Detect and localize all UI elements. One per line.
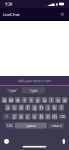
button[interactable]: o bbox=[55, 97, 61, 103]
staticText: ⌫ bbox=[59, 114, 65, 119]
button[interactable]: Type bbox=[22, 87, 45, 93]
staticText: ⇧ bbox=[5, 114, 8, 119]
staticText: p bbox=[63, 96, 66, 104]
staticText: 123 bbox=[6, 123, 12, 128]
staticText: b bbox=[40, 113, 43, 120]
staticText: o bbox=[56, 96, 59, 104]
staticText: return bbox=[51, 123, 62, 128]
staticText: LiveChat bbox=[3, 12, 20, 17]
button[interactable]: g bbox=[32, 104, 37, 110]
staticText: “Type” bbox=[6, 88, 17, 93]
staticText: h bbox=[40, 104, 43, 111]
staticText: u bbox=[43, 96, 46, 104]
staticText: z bbox=[13, 113, 16, 120]
staticText: r bbox=[23, 96, 25, 104]
button[interactable]: Close bbox=[58, 10, 66, 18]
button[interactable]: r bbox=[22, 97, 27, 103]
button[interactable]: w bbox=[8, 97, 14, 103]
button[interactable]: s bbox=[12, 104, 17, 110]
staticText: 9:28 bbox=[5, 1, 12, 7]
staticText: ◗ bbox=[56, 2, 58, 6]
staticText: l bbox=[61, 104, 62, 111]
button[interactable]: “Type” bbox=[1, 87, 22, 93]
button[interactable]: h bbox=[38, 104, 44, 110]
button[interactable]: Emoji bbox=[4, 139, 9, 144]
button[interactable]: Dictate bbox=[63, 139, 65, 144]
staticText: j bbox=[47, 104, 48, 111]
staticText: Type bbox=[29, 88, 37, 93]
button[interactable]: t bbox=[28, 97, 34, 103]
button[interactable]: space bbox=[15, 122, 47, 128]
staticText: k bbox=[53, 104, 56, 111]
button[interactable]: j bbox=[45, 104, 51, 110]
staticText: y bbox=[36, 96, 39, 104]
button[interactable]: e bbox=[15, 97, 20, 103]
button[interactable]: f bbox=[25, 104, 30, 110]
staticText: f bbox=[27, 104, 29, 111]
staticText: c bbox=[26, 113, 29, 120]
button[interactable]: p bbox=[62, 97, 67, 103]
button[interactable]: y bbox=[35, 97, 41, 103]
button[interactable]: x bbox=[18, 113, 24, 119]
button[interactable]: ⌫ bbox=[59, 113, 66, 119]
staticText: m bbox=[52, 113, 57, 120]
staticText: t bbox=[30, 96, 32, 104]
staticText: a bbox=[6, 104, 9, 111]
button[interactable]: d bbox=[18, 104, 24, 110]
staticText: x bbox=[20, 113, 23, 120]
button[interactable]: k bbox=[52, 104, 57, 110]
button[interactable]: z bbox=[12, 113, 17, 119]
staticText: ✕ bbox=[60, 11, 64, 18]
staticText: ▁▃▅ bbox=[46, 2, 55, 6]
button[interactable]: c bbox=[25, 113, 30, 119]
button[interactable]: b bbox=[38, 113, 44, 119]
staticText: g bbox=[33, 104, 36, 111]
button[interactable]: ⇧ bbox=[3, 113, 10, 119]
staticText: q bbox=[3, 96, 6, 104]
button[interactable]: l bbox=[59, 104, 64, 110]
staticText: n bbox=[46, 113, 49, 120]
staticText: i bbox=[51, 96, 52, 104]
button[interactable]: 123 bbox=[5, 122, 13, 128]
staticText: s bbox=[13, 104, 16, 111]
button[interactable]: v bbox=[32, 113, 37, 119]
button[interactable]: q bbox=[2, 97, 7, 103]
button[interactable]: u bbox=[42, 97, 47, 103]
button[interactable]: return bbox=[48, 122, 64, 128]
staticText: space bbox=[26, 123, 36, 128]
button[interactable]: i bbox=[49, 97, 54, 103]
button[interactable]: m bbox=[52, 113, 57, 119]
staticText: v bbox=[33, 113, 36, 120]
staticText: e bbox=[16, 96, 19, 104]
button[interactable]: a bbox=[5, 104, 10, 110]
staticText: d bbox=[20, 104, 23, 111]
staticText: edit.yourname.com bbox=[17, 78, 51, 83]
button[interactable]: n bbox=[45, 113, 51, 119]
staticText: w bbox=[9, 96, 13, 104]
